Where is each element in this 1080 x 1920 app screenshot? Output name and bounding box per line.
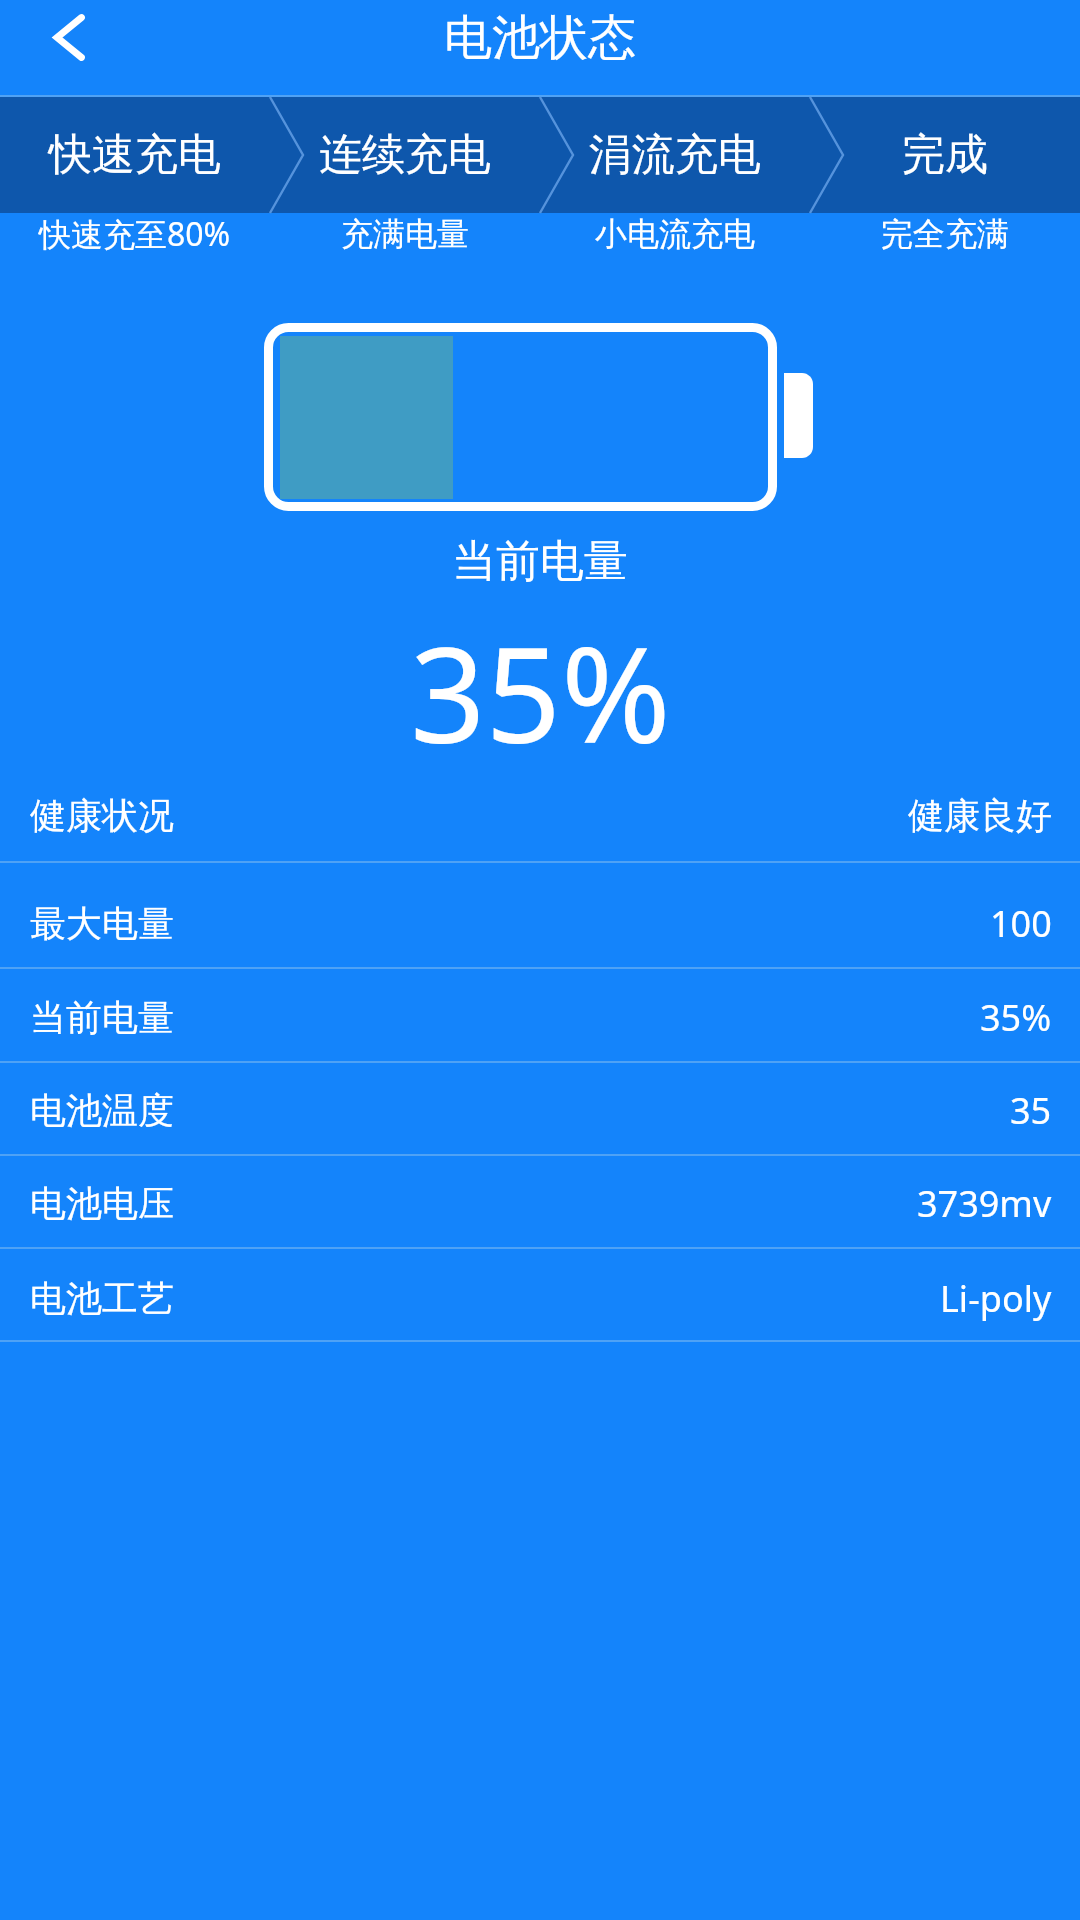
staticText: 充满电量 xyxy=(341,214,469,254)
staticText: 3739mv xyxy=(917,1179,1052,1228)
staticText: 快速充至80% xyxy=(39,212,231,256)
staticText: 涓流充电 xyxy=(589,128,761,182)
button[interactable]: 电池工艺 xyxy=(0,1248,1080,1341)
staticText: 35 xyxy=(1010,1086,1052,1135)
staticText: 连续充电 xyxy=(319,128,491,182)
staticText: 35% xyxy=(980,993,1052,1042)
staticText: 完全充满 xyxy=(881,214,1009,254)
button[interactable]: 涓流充电 xyxy=(540,97,810,213)
staticText: 健康良好 xyxy=(908,793,1052,838)
staticText: 完成 xyxy=(902,128,988,182)
button[interactable]: Back xyxy=(0,0,130,96)
button[interactable]: 当前电量 xyxy=(0,968,1080,1062)
staticText: 电池电压 xyxy=(30,1181,174,1226)
button[interactable]: 完成 xyxy=(810,97,1080,213)
staticText: 小电流充电 xyxy=(595,214,755,254)
staticText: 当前电量 xyxy=(452,534,628,589)
staticText: 快速充电 xyxy=(49,128,221,182)
staticText: 最大电量 xyxy=(30,901,174,946)
staticText: 电池状态 xyxy=(444,8,636,68)
button[interactable]: 电池温度 xyxy=(0,1062,1080,1155)
button[interactable]: 最大电量 xyxy=(0,862,1080,968)
button[interactable]: 连续充电 xyxy=(270,97,540,213)
staticText: 健康状况 xyxy=(30,793,174,838)
button[interactable]: 快速充电 xyxy=(0,97,270,213)
staticText: 100 xyxy=(990,899,1052,948)
staticText: Li-poly xyxy=(940,1274,1052,1323)
button[interactable]: 电池电压 xyxy=(0,1155,1080,1248)
staticText: 35% xyxy=(410,602,671,752)
staticText: 当前电量 xyxy=(30,995,174,1040)
button[interactable]: 健康状况 xyxy=(0,769,1080,862)
staticText: 电池温度 xyxy=(30,1088,174,1133)
staticText: 电池工艺 xyxy=(30,1276,174,1321)
